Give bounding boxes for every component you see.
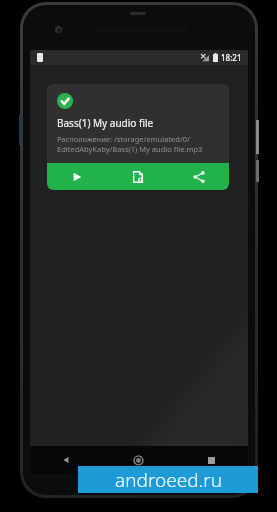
- staticText: Расположение: /storage/emulated/0/ Edite…: [57, 134, 203, 154]
- button[interactable]: Share: [168, 163, 229, 190]
- staticText: androeed.ru: [115, 467, 222, 493]
- button[interactable]: Recents: [175, 446, 248, 474]
- button[interactable]: Back: [30, 446, 102, 474]
- button[interactable]: Home: [102, 446, 175, 474]
- button[interactable]: Play: [47, 163, 107, 190]
- staticText: 18:21: [221, 52, 242, 63]
- staticText: Bass(1) My audio file: [57, 116, 154, 130]
- button[interactable]: Save file: [107, 163, 168, 190]
